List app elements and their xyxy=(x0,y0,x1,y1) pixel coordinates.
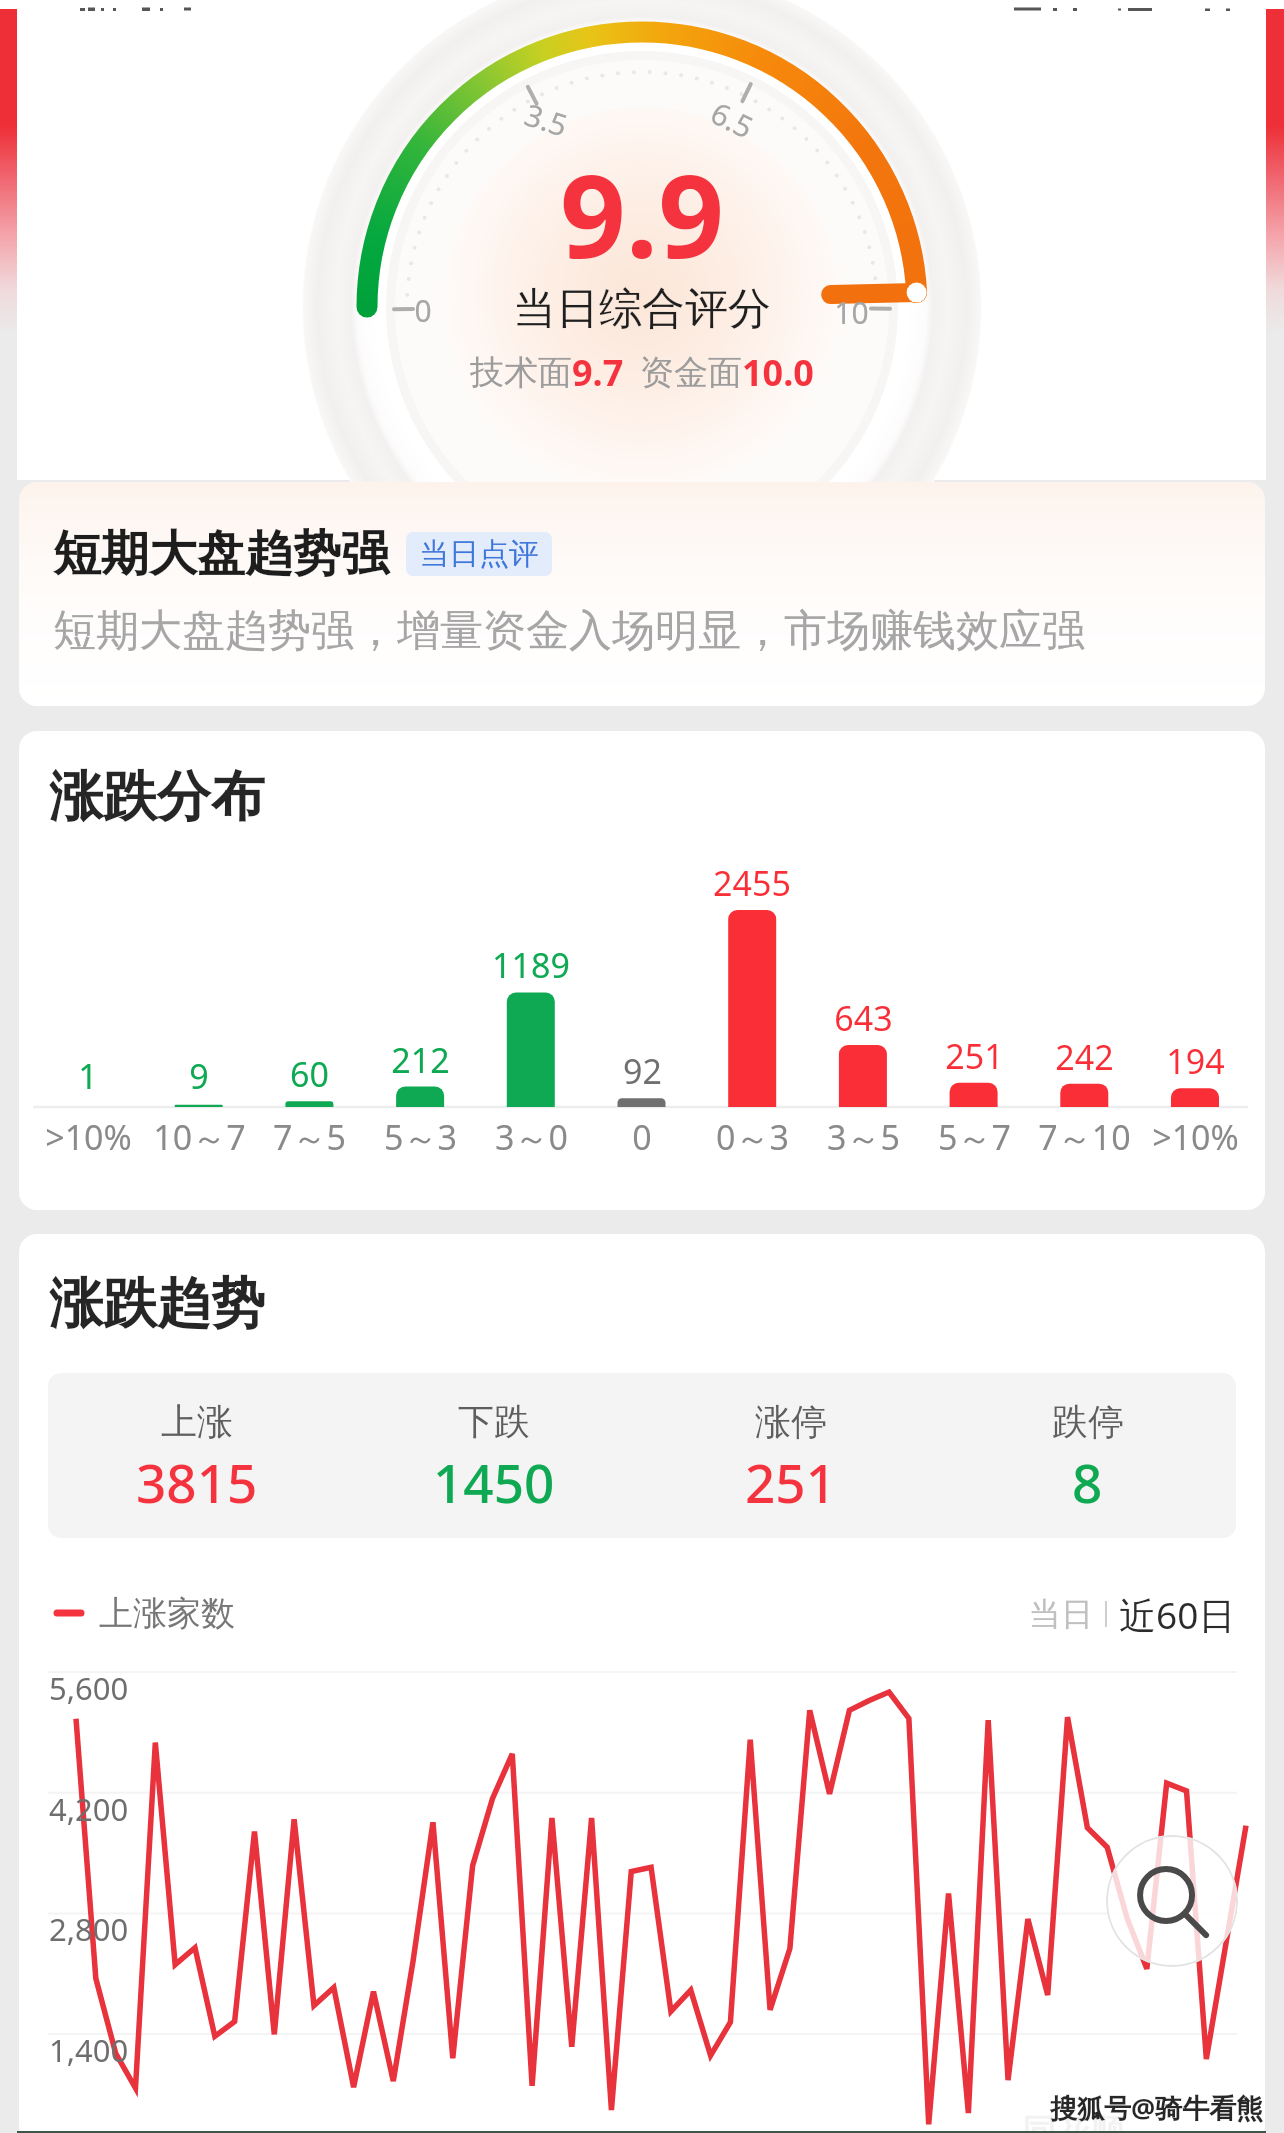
staticText: 1450 xyxy=(433,1446,555,1518)
staticText: 10 xyxy=(834,292,869,333)
staticText: 3.5 xyxy=(519,93,573,146)
staticText: 技术面 xyxy=(470,351,572,394)
staticText: 60 xyxy=(290,1051,329,1095)
staticText: 0 xyxy=(414,290,432,331)
staticText: 6.5 xyxy=(704,92,760,147)
staticText: 9.7 xyxy=(572,348,624,397)
staticText: 643 xyxy=(834,995,893,1039)
staticText: 10～7 xyxy=(153,1114,246,1160)
staticText: 短期大盘趋势强 xyxy=(53,524,389,584)
staticText: 短期大盘趋势强，增量资金入场明显，市场赚钱效应强 xyxy=(53,604,1085,658)
staticText: 5～7 xyxy=(938,1114,1011,1160)
staticText: 下跌 xyxy=(458,1399,530,1444)
staticText: 2,800 xyxy=(49,1908,129,1950)
button[interactable]: 当日 xyxy=(1029,1594,1093,1634)
staticText: >10% xyxy=(45,1114,132,1160)
staticText: 上涨家数 xyxy=(99,1592,235,1635)
staticText: 3～5 xyxy=(827,1114,900,1160)
button[interactable]: 短期大盘趋势强 xyxy=(19,482,1265,706)
staticText: 4,200 xyxy=(49,1788,129,1830)
staticText: 涨跌分布 xyxy=(49,763,265,831)
staticText: 1 xyxy=(78,1053,98,1097)
staticText: 242 xyxy=(1055,1034,1114,1078)
staticText: 0 xyxy=(632,1114,652,1160)
staticText: 1189 xyxy=(492,942,570,986)
staticText: 212 xyxy=(391,1037,450,1081)
staticText: 3815 xyxy=(136,1446,258,1518)
staticText: 5～3 xyxy=(384,1114,457,1160)
staticText: 当日点评 xyxy=(419,535,539,573)
staticText: 2455 xyxy=(713,860,791,904)
staticText: 9.9 xyxy=(560,135,724,265)
staticText: 1,400 xyxy=(49,2029,129,2071)
staticText: 251 xyxy=(945,1033,1004,1077)
button[interactable]: Zoom chart xyxy=(1106,1835,1238,1967)
button[interactable]: 近60日 xyxy=(1119,1589,1236,1639)
staticText: 9 xyxy=(189,1053,209,1097)
staticText: 3～0 xyxy=(495,1114,568,1160)
staticText: >10% xyxy=(1152,1114,1239,1160)
staticText: 194 xyxy=(1166,1038,1225,1082)
staticText: 资金面 xyxy=(640,351,742,394)
staticText: 搜狐号@骑牛看熊 xyxy=(1050,2089,1264,2126)
staticText: 上涨 xyxy=(161,1399,233,1444)
staticText: 251 xyxy=(745,1446,836,1518)
staticText: 7～5 xyxy=(273,1114,346,1160)
staticText: 8 xyxy=(1072,1446,1103,1518)
staticText: 跌停 xyxy=(1052,1399,1124,1444)
staticText: 5,600 xyxy=(49,1667,129,1709)
staticText: 10.0 xyxy=(742,348,814,397)
staticText: 当日综合评分 xyxy=(513,282,771,336)
staticText: 7～10 xyxy=(1038,1114,1131,1160)
staticText: 0～3 xyxy=(716,1114,789,1160)
staticText: 涨跌趋势 xyxy=(49,1270,265,1338)
staticText: 涨停 xyxy=(755,1399,827,1444)
staticText: 92 xyxy=(623,1048,662,1092)
staticText: 同花顺 xyxy=(1022,2110,1124,2133)
